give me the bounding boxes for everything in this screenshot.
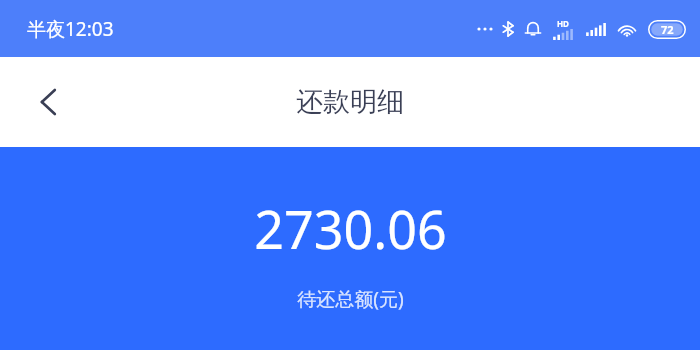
- staticText: 72: [661, 22, 674, 37]
- staticText: 2730.06: [254, 193, 447, 264]
- staticText: HD: [557, 18, 569, 29]
- staticText: 半夜12:03: [27, 16, 114, 42]
- button[interactable]: Back: [18, 72, 78, 132]
- staticText: 待还总额(元): [297, 286, 404, 312]
- staticText: 还款明细: [296, 85, 404, 119]
